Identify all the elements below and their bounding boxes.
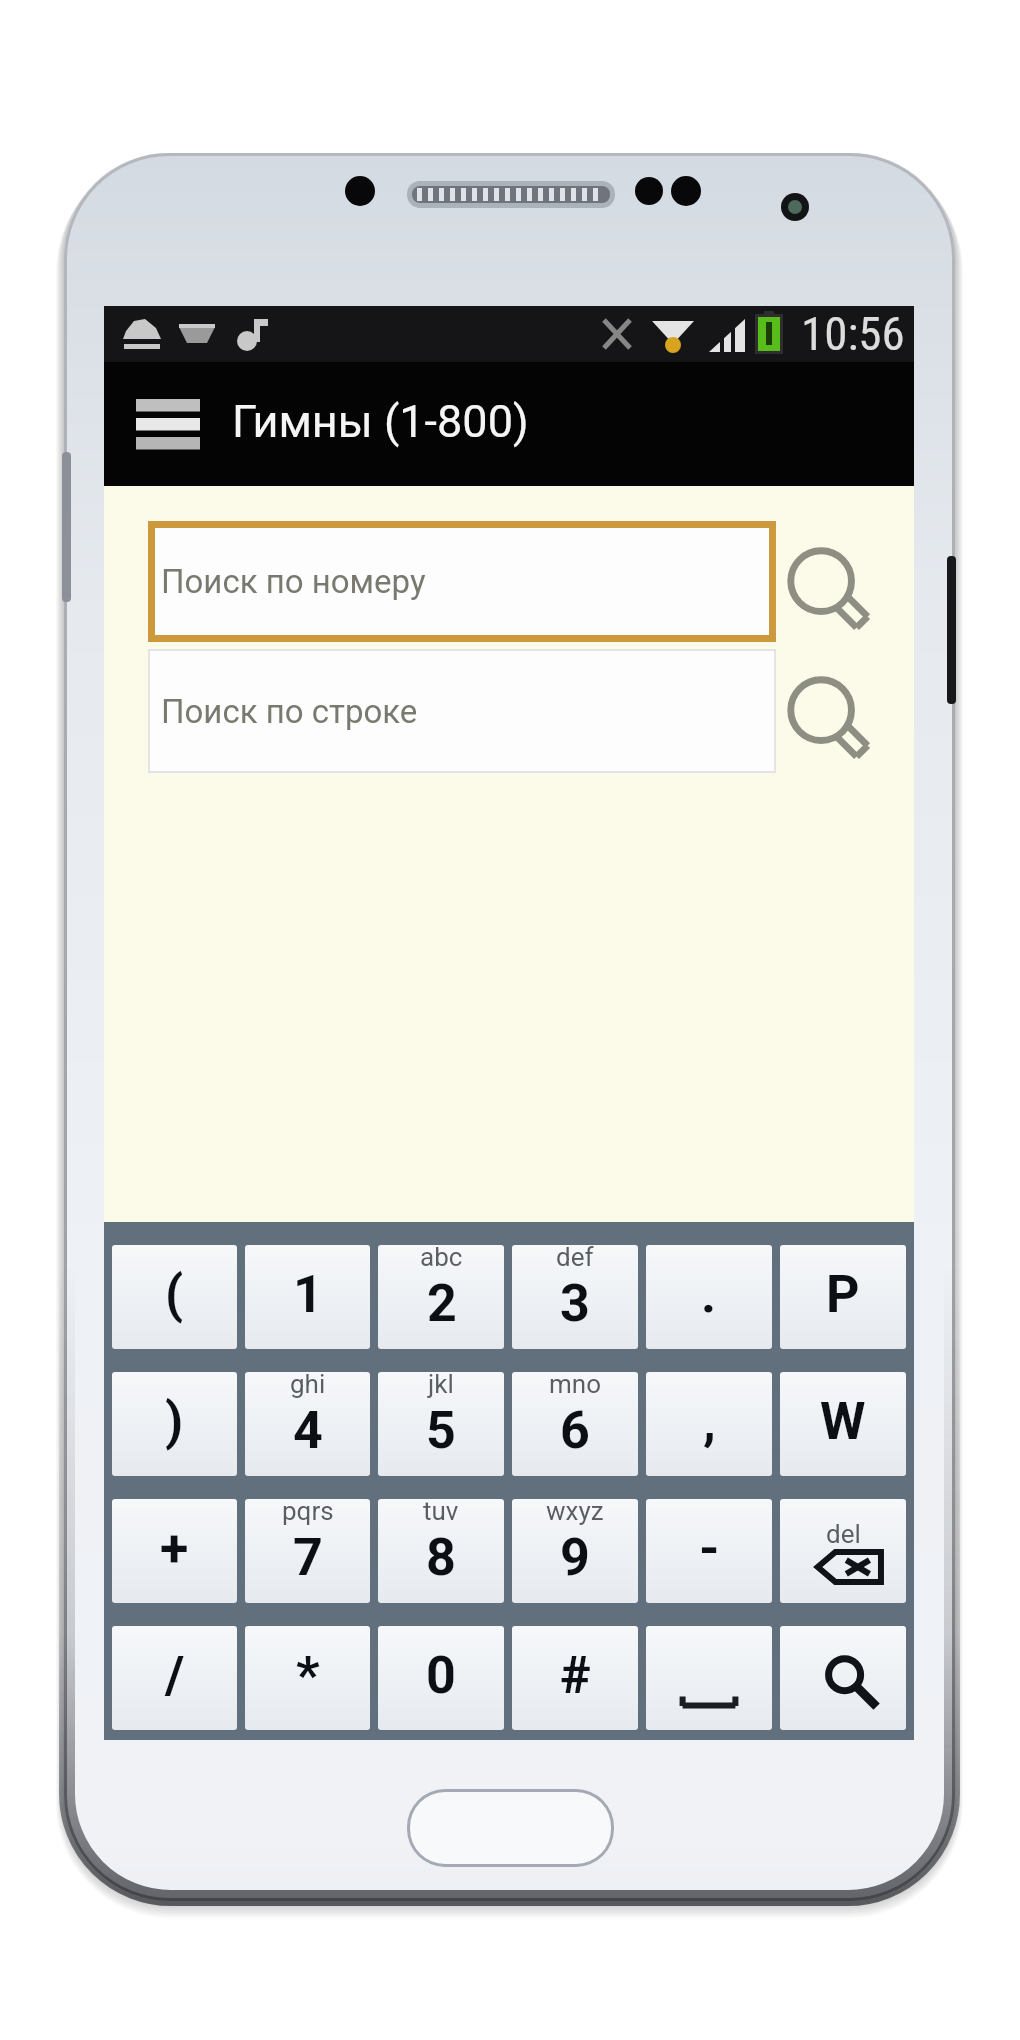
staticText: mno [549,1372,601,1399]
button[interactable]: def [512,1245,638,1349]
button[interactable]: / [112,1626,237,1730]
staticText: 9 [560,1527,590,1588]
staticText: abc [420,1245,463,1272]
button[interactable]: mno [512,1372,638,1476]
button[interactable]: tuv [378,1499,504,1603]
button[interactable]: 1 [245,1245,370,1349]
button[interactable]: . [646,1245,772,1349]
staticText: 0 [426,1645,456,1706]
staticText: wxyz [546,1499,604,1526]
button[interactable]: jkl [378,1372,504,1476]
staticText: ghi [290,1372,326,1399]
staticText: P [826,1264,860,1325]
button[interactable]: abc [378,1245,504,1349]
button[interactable]: wxyz [512,1499,638,1603]
staticText: # [560,1645,591,1706]
staticText: Поиск по номеру [161,562,426,601]
button[interactable]: Menu [122,378,214,470]
staticText: / [165,1645,185,1706]
button[interactable]: Search [786,521,896,642]
button[interactable]: + [112,1499,237,1603]
button[interactable]: Search [786,649,896,773]
staticText: 6 [560,1400,590,1461]
button[interactable]: ) [112,1372,237,1476]
staticText: 2 [427,1273,457,1334]
staticText: , [703,1391,716,1452]
button[interactable]: P [780,1245,906,1349]
button[interactable]: * [245,1626,370,1730]
button[interactable]: 0 [378,1626,504,1730]
button[interactable]: pqrs [245,1499,370,1603]
staticText: def [556,1245,594,1272]
staticText: tuv [423,1499,459,1526]
staticText: 10:56 [801,306,905,361]
staticText: 3 [560,1273,590,1334]
staticText: Гимны (1-800) [232,395,529,448]
button[interactable]: Поиск по номеру [148,521,776,642]
button[interactable]: , [646,1372,772,1476]
button[interactable]: del [780,1499,906,1603]
button[interactable]: ghi [245,1372,370,1476]
staticText: W [820,1391,866,1452]
button[interactable] [780,1626,906,1730]
staticText: 5 [426,1400,456,1461]
button[interactable]: - [646,1499,772,1603]
staticText: 8 [426,1527,456,1588]
staticText: . [701,1264,717,1325]
staticText: 4 [293,1400,323,1461]
staticText: 1 [293,1264,323,1325]
staticText: jkl [428,1372,454,1399]
staticText: pqrs [282,1499,334,1526]
staticText: 7 [293,1527,323,1588]
staticText: ( [165,1264,184,1325]
button[interactable]: ( [112,1245,237,1349]
button[interactable]: # [512,1626,638,1730]
staticText: * [296,1645,320,1706]
button[interactable]: Поиск по строке [148,649,776,773]
staticText: ) [165,1391,184,1452]
staticText: + [160,1518,189,1579]
staticText: - [699,1518,720,1579]
button[interactable] [646,1626,772,1730]
staticText: Поиск по строке [161,692,418,731]
staticText: del [826,1519,861,1549]
button[interactable]: W [780,1372,906,1476]
